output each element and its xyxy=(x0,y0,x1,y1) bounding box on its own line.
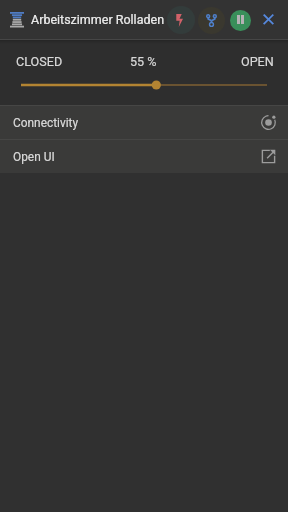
button[interactable]: Connectivity xyxy=(0,106,288,139)
button[interactable]: Pause xyxy=(230,10,251,31)
staticText: CLOSED xyxy=(16,54,63,69)
staticText: 55 % xyxy=(130,54,157,69)
staticText: Open UI xyxy=(13,150,55,164)
staticText: OPEN xyxy=(241,54,274,69)
button[interactable]: Scenes xyxy=(198,7,225,34)
staticText: Connectivity xyxy=(13,116,79,130)
staticText: Arbeitszimmer Rolladen xyxy=(31,12,165,27)
button[interactable]: Position slider xyxy=(0,73,288,97)
button[interactable]: Open UI xyxy=(0,140,288,173)
button[interactable]: Close xyxy=(258,8,282,32)
button[interactable]: Power xyxy=(167,6,195,34)
